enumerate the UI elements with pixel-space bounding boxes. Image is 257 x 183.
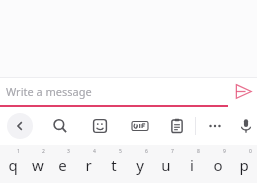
staticText: 3 (67, 148, 70, 155)
staticText: 0 (249, 148, 252, 155)
staticText: 2 (42, 148, 45, 155)
button[interactable]: 8 (179, 145, 205, 183)
staticText: o (213, 155, 223, 175)
staticText: r (85, 155, 92, 175)
staticText: 6 (145, 148, 148, 155)
button[interactable]: Voice input (234, 107, 257, 145)
staticText: 8 (197, 148, 200, 155)
staticText: w (32, 155, 44, 175)
staticText: 4 (93, 148, 96, 155)
button[interactable]: 2 (25, 145, 50, 183)
button[interactable]: 9 (205, 145, 231, 183)
staticText: e (58, 155, 67, 175)
staticText: 1 (17, 148, 20, 155)
button[interactable]: Clipboard (159, 107, 195, 145)
staticText: u (161, 155, 171, 175)
button[interactable]: 4 (75, 145, 101, 183)
button[interactable]: Search (40, 107, 80, 145)
staticText: q (8, 155, 18, 175)
button[interactable]: 3 (50, 145, 75, 183)
button[interactable]: 5 (101, 145, 127, 183)
button[interactable]: 6 (127, 145, 153, 183)
staticText: 9 (223, 148, 226, 155)
button[interactable]: Send (229, 78, 257, 105)
staticText: y (136, 155, 144, 175)
button[interactable]: Stickers (80, 107, 120, 145)
staticText: 7 (171, 148, 174, 155)
staticText: t (111, 155, 117, 175)
staticText: 5 (119, 148, 122, 155)
staticText: i (190, 155, 194, 175)
button[interactable]: More options (196, 107, 234, 145)
button[interactable]: 1 (0, 145, 25, 183)
button[interactable]: GIF (120, 107, 159, 145)
staticText: p (239, 155, 249, 175)
staticText: Write a message (6, 84, 92, 99)
button[interactable]: 0 (231, 145, 257, 183)
button[interactable]: 7 (153, 145, 179, 183)
button[interactable]: Back (7, 113, 33, 139)
